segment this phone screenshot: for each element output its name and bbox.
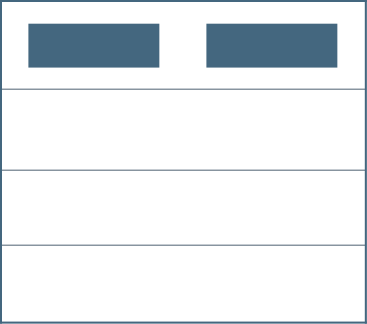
button[interactable] <box>2 246 365 322</box>
button[interactable]: Primary action <box>28 24 159 68</box>
button[interactable] <box>2 90 365 170</box>
button[interactable] <box>2 171 365 245</box>
button[interactable]: Secondary action <box>206 24 337 68</box>
